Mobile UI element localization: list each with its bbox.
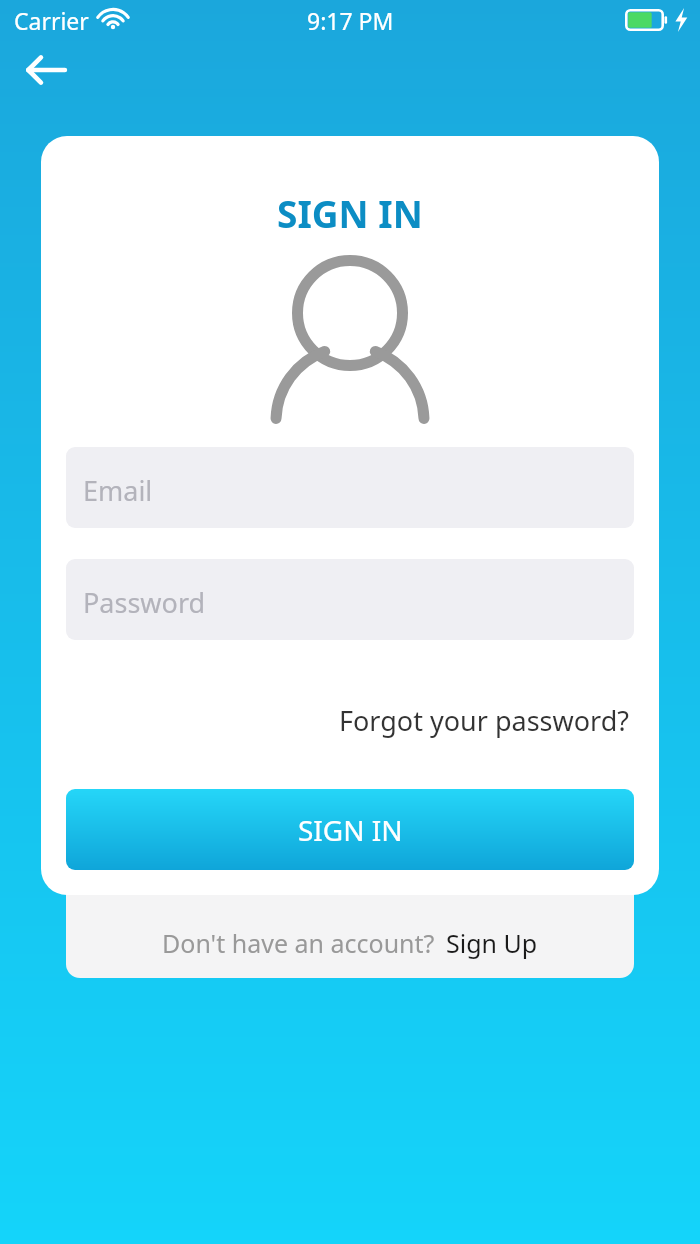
staticText: Sign Up [446, 926, 538, 960]
staticText: Don't have an account? [162, 926, 435, 960]
staticText: 9:17 PM [307, 5, 394, 36]
staticText: SIGN IN [277, 188, 423, 238]
staticText: Password [83, 584, 206, 621]
staticText: Carrier [14, 5, 89, 36]
button[interactable]: SIGN IN [66, 789, 634, 870]
button[interactable]: Email [66, 447, 634, 528]
button[interactable]: Don't have an account? [66, 908, 634, 978]
button[interactable]: Back [16, 40, 76, 100]
staticText: SIGN IN [298, 811, 403, 849]
button[interactable]: Forgot your password? [335, 696, 634, 745]
button[interactable]: Password [66, 559, 634, 640]
staticText: Forgot your password? [339, 702, 630, 739]
staticText: Email [83, 472, 153, 509]
